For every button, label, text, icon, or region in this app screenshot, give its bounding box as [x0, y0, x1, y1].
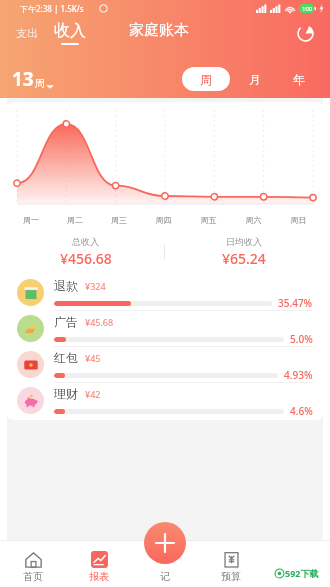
button[interactable]: 广告 — [7, 310, 323, 346]
staticText: 预算 — [221, 570, 241, 583]
staticText: 日均收入 — [226, 236, 262, 247]
staticText: ¥45.68 — [85, 316, 114, 328]
staticText: 报表 — [89, 570, 109, 583]
staticText: 592下载 — [285, 567, 319, 579]
staticText: 周日 — [276, 215, 321, 225]
button[interactable]: 预算 — [198, 540, 264, 587]
button[interactable]: 支出 — [14, 26, 40, 40]
staticText: 下午2:38 | 1.5K/s — [20, 3, 84, 14]
staticText: 周 — [200, 72, 212, 87]
button[interactable]: 理财 — [7, 382, 323, 418]
staticText: 年 — [293, 72, 305, 87]
staticText: 35.47% — [278, 296, 313, 310]
button[interactable]: Pie chart report — [292, 20, 318, 46]
staticText: 周二 — [53, 215, 97, 225]
staticText: 周三 — [97, 215, 141, 225]
button[interactable]: 周 — [182, 67, 230, 91]
staticText: ¥324 — [85, 280, 106, 292]
staticText: 周四 — [141, 215, 186, 225]
button[interactable]: 收入 — [54, 21, 86, 45]
staticText: 月 — [249, 72, 261, 87]
button[interactable]: 红包 — [7, 346, 323, 382]
staticText: 首页 — [23, 570, 43, 583]
staticText: 100 — [302, 5, 313, 13]
staticText: 记 — [160, 570, 170, 583]
staticText: ¥456.68 — [60, 249, 112, 268]
staticText: 总收入 — [72, 236, 99, 247]
staticText: 红包 — [54, 350, 78, 365]
staticText: 周五 — [186, 215, 231, 225]
button[interactable]: 13 — [12, 66, 55, 92]
staticText: 4.6% — [290, 404, 313, 418]
staticText: 支出 — [16, 26, 38, 40]
staticText: 收入 — [54, 21, 86, 41]
staticText: 理财 — [54, 386, 78, 401]
staticText: ¥42 — [85, 388, 101, 400]
staticText: 13 — [12, 66, 34, 92]
button[interactable]: 退款 — [7, 274, 323, 310]
staticText: 周 — [35, 77, 45, 90]
staticText: 周六 — [231, 215, 276, 225]
button[interactable]: 年 — [288, 67, 310, 91]
staticText: 退款 — [54, 278, 78, 293]
staticText: ¥45 — [85, 352, 101, 364]
staticText: 4.93% — [284, 368, 313, 382]
button[interactable]: 报表 — [66, 540, 132, 587]
staticText: 5.0% — [290, 332, 313, 346]
button[interactable]: Add record — [144, 522, 186, 564]
button[interactable]: 月 — [244, 67, 266, 91]
staticText: 家庭账本 — [129, 21, 189, 40]
staticText: ¥65.24 — [222, 249, 266, 268]
button[interactable]: 首页 — [0, 540, 66, 587]
staticText: 广告 — [54, 314, 78, 329]
staticText: 周一 — [9, 215, 53, 225]
